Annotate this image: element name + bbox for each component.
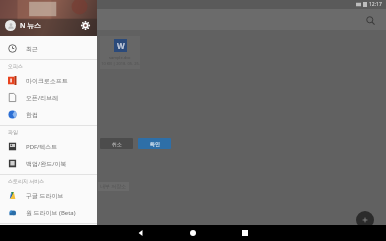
staticText: 내부 저장소 — [100, 183, 127, 190]
button[interactable]: Recent apps — [225, 225, 265, 241]
staticText: 마이크로소프트 — [26, 77, 68, 85]
button[interactable]: 백업/완드/이북 — [0, 155, 97, 172]
button[interactable]: Home — [173, 225, 213, 241]
staticText: 오피스 — [8, 63, 23, 69]
button[interactable]: Back — [121, 225, 161, 241]
staticText: W — [117, 40, 125, 51]
staticText: 취소 — [112, 141, 122, 147]
staticText: 확인 — [150, 141, 160, 147]
staticText: 백업/완드/이북 — [26, 160, 67, 168]
staticText: 한컴 — [26, 111, 38, 119]
staticText: sample.doc — [109, 55, 131, 60]
button[interactable]: 최근 — [0, 40, 97, 57]
button[interactable]: 취소 — [100, 138, 133, 149]
button[interactable]: 마이크로소프트 — [0, 72, 97, 89]
button[interactable]: 구글 드라이브 — [0, 187, 97, 204]
button[interactable]: 오픈/리브레 — [0, 89, 97, 106]
staticText: PDF/텍스트 — [26, 143, 58, 151]
button[interactable]: 확인 — [138, 138, 171, 149]
button[interactable]: Search — [362, 12, 378, 28]
button[interactable]: N 뉴스 — [0, 0, 97, 36]
staticText: 최근 — [26, 45, 38, 53]
button[interactable]: 정보 — [0, 224, 97, 241]
button[interactable]: Add — [356, 211, 374, 229]
button[interactable]: PDF/텍스트 — [0, 138, 97, 155]
button[interactable]: 내부 저장소 — [98, 182, 129, 191]
button[interactable]: Settings — [79, 19, 92, 32]
button[interactable]: W — [100, 36, 140, 69]
staticText: 12:17 — [369, 1, 382, 8]
staticText: 10 KB | 2018. 05. 25. — [101, 61, 140, 66]
staticText: 원 드라이브 (Beta) — [26, 209, 76, 217]
button[interactable]: 원 드라이브 (Beta) — [0, 204, 97, 221]
staticText: 오픈/리브레 — [26, 94, 59, 102]
staticText: N 뉴스 — [20, 21, 42, 31]
staticText: 파일 — [8, 129, 18, 135]
staticText: 구글 드라이브 — [26, 192, 64, 200]
button[interactable]: 한컴 — [0, 106, 97, 123]
staticText: 스토리지 서비스 — [8, 178, 45, 185]
